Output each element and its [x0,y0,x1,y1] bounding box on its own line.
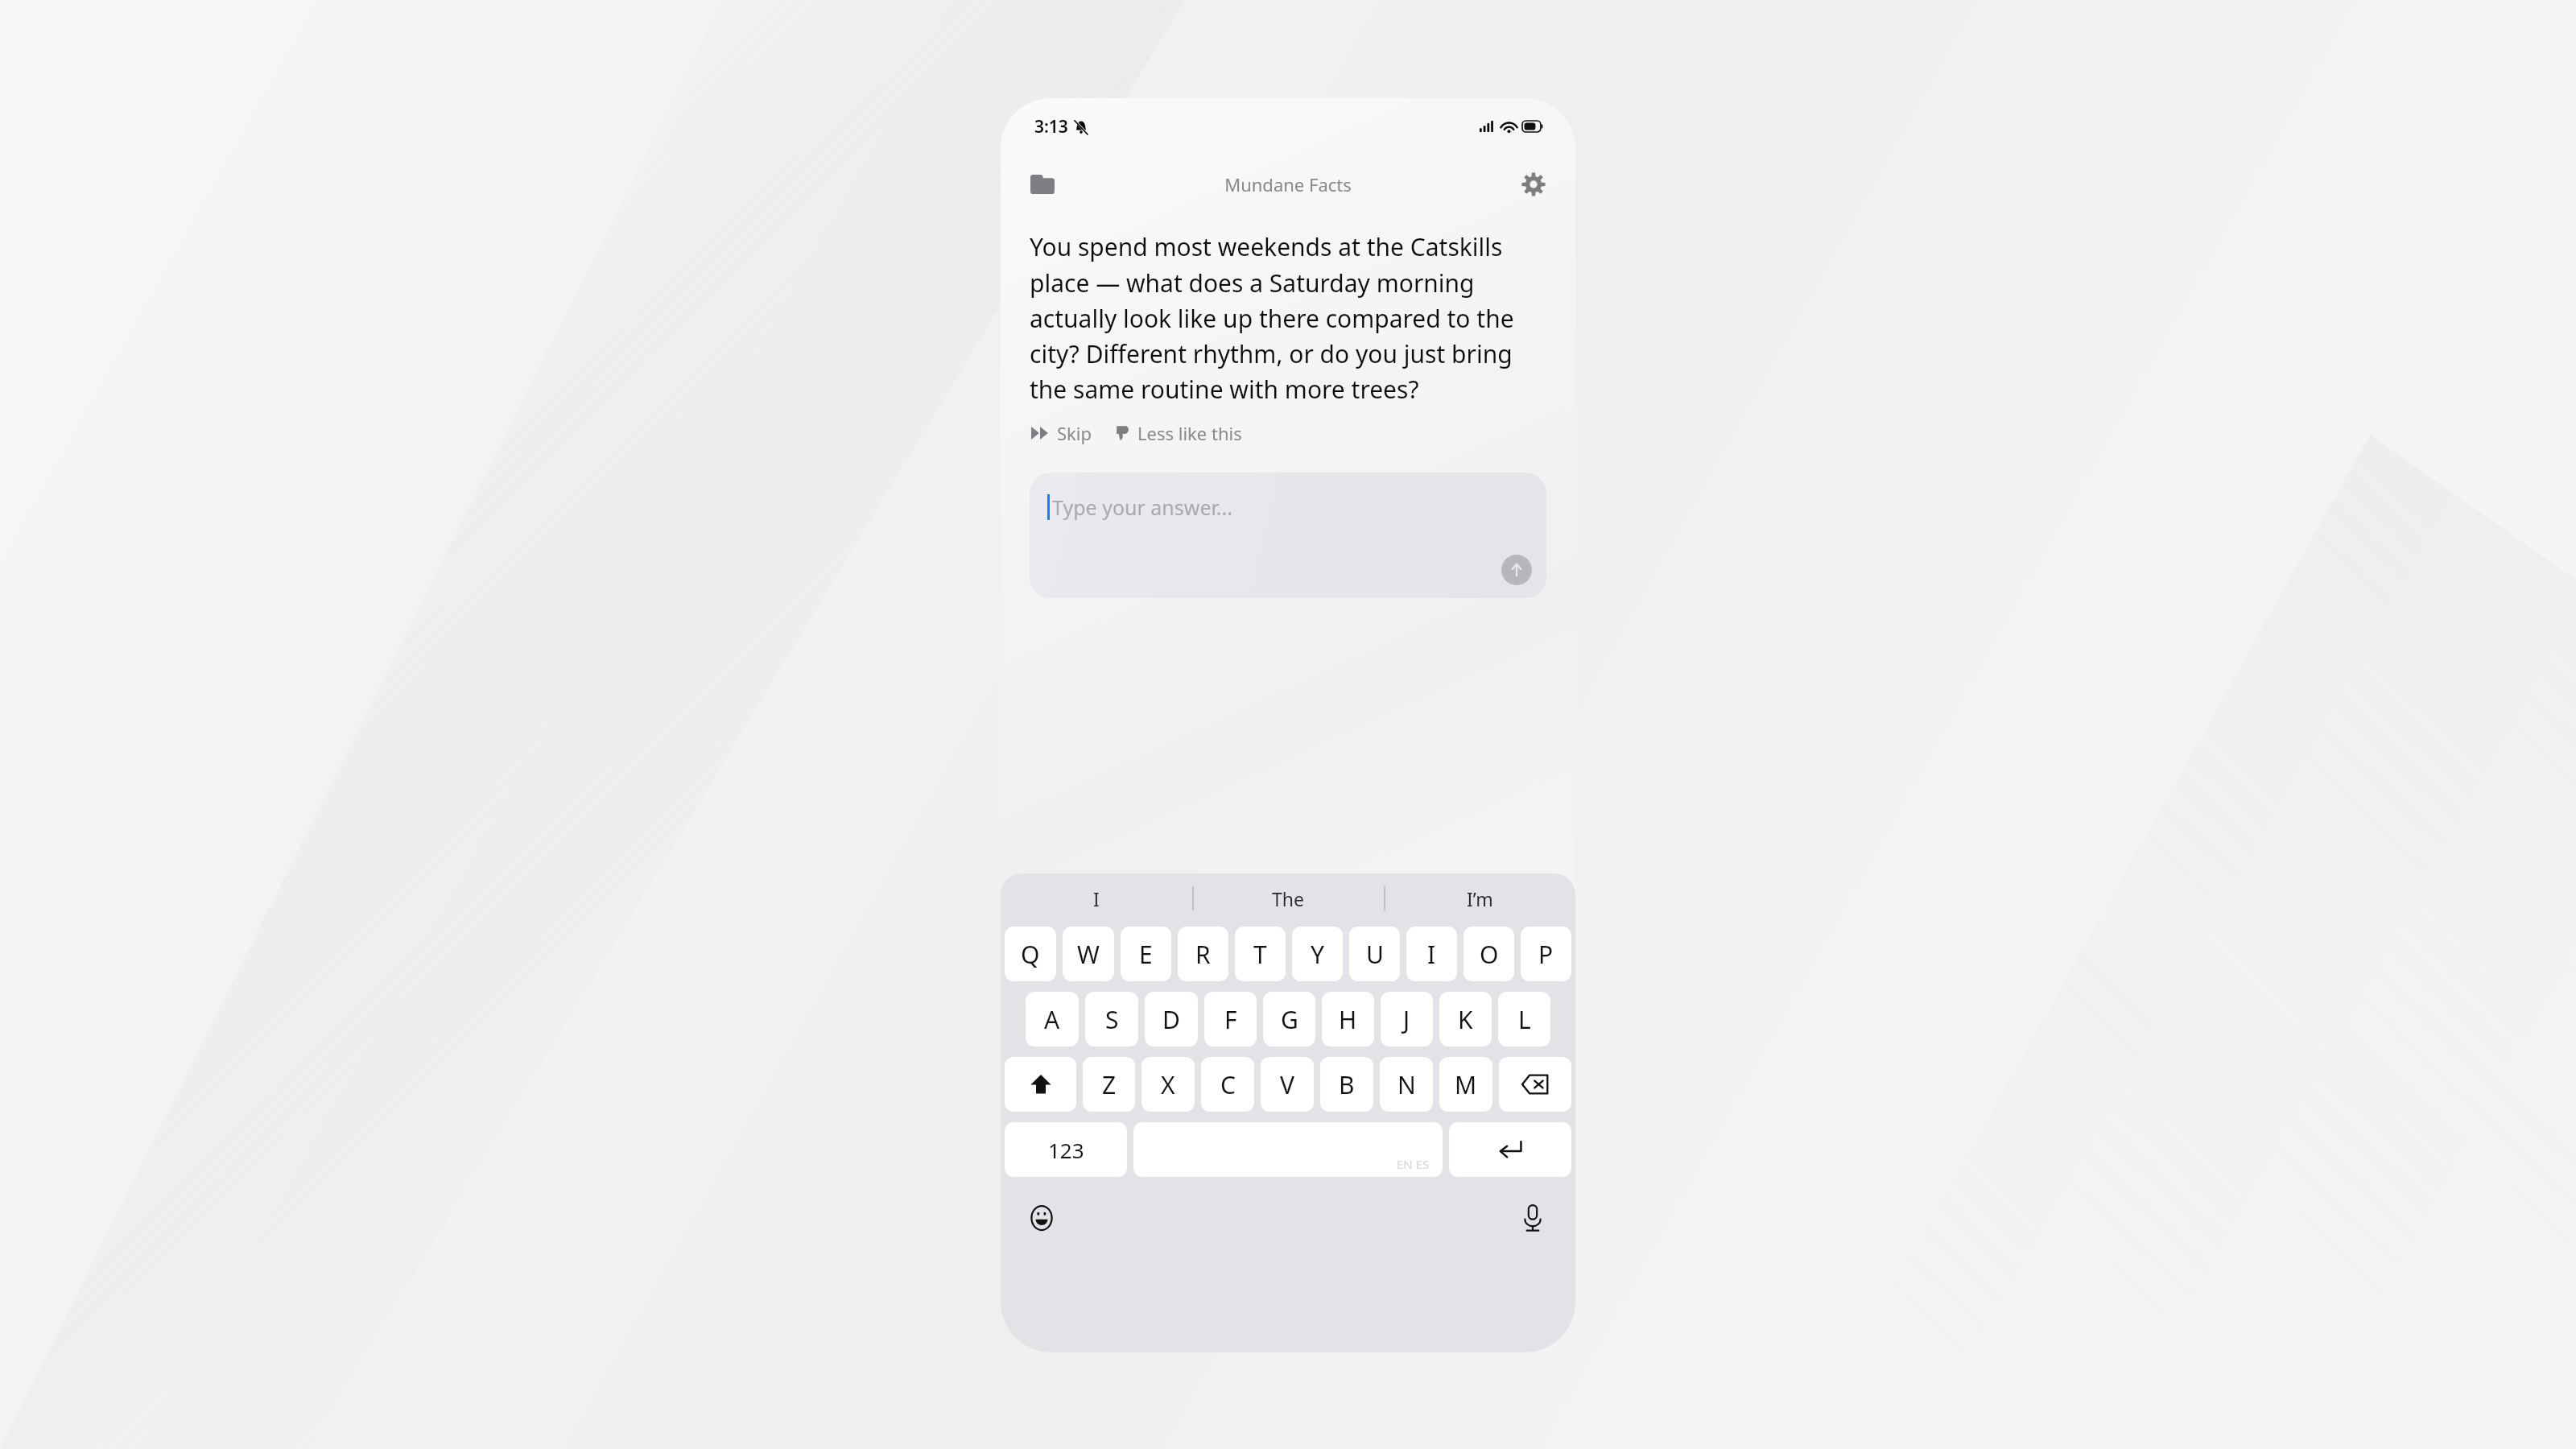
button[interactable]: K [1439,992,1492,1046]
staticText: W [1077,938,1100,971]
staticText: A [1044,1003,1060,1036]
staticText: You spend most weekends at the Catskills… [1030,230,1546,405]
staticText: E [1139,938,1153,971]
button[interactable]: Settings [1513,163,1554,205]
button[interactable]: F [1204,992,1257,1046]
staticText: The [1272,886,1304,911]
button[interactable]: G [1263,992,1315,1046]
button[interactable]: Less like this [1113,416,1244,450]
staticText: M [1455,1068,1477,1101]
staticText: Less like this [1137,421,1242,445]
button[interactable]: Shift [1005,1057,1076,1112]
button[interactable]: U [1349,927,1400,981]
staticText: J [1403,1003,1410,1036]
staticText: D [1162,1003,1180,1036]
staticText: F [1224,1003,1237,1036]
staticText: G [1281,1003,1298,1036]
staticText: Z [1102,1068,1117,1101]
staticText: Mundane Facts [1224,172,1352,196]
staticText: B [1339,1068,1355,1101]
button[interactable]: 123 [1005,1122,1127,1177]
staticText: 123 [1048,1136,1084,1164]
button[interactable]: Send [1501,555,1532,585]
staticText: Skip [1057,421,1092,445]
button[interactable]: D [1145,992,1198,1046]
button[interactable]: O [1463,927,1514,981]
button[interactable]: R [1178,927,1228,981]
staticText: V [1280,1068,1294,1101]
staticText: I’m [1467,886,1493,911]
button[interactable]: S [1085,992,1138,1046]
staticText: R [1195,938,1211,971]
staticText: N [1397,1068,1416,1101]
staticText: L [1518,1003,1531,1036]
button[interactable]: I’m [1384,873,1575,923]
staticText: K [1458,1003,1473,1036]
button[interactable]: Y [1292,927,1343,981]
button[interactable]: P [1521,927,1571,981]
staticText: EN ES [1397,1156,1430,1172]
staticText: X [1161,1068,1175,1101]
button[interactable]: Skip [1030,416,1094,450]
staticText: Type your answer... [1052,493,1232,521]
button[interactable]: V [1261,1057,1314,1112]
button[interactable]: M [1439,1057,1492,1112]
staticText: S [1105,1003,1119,1036]
button[interactable]: Return [1449,1122,1571,1177]
button[interactable]: Z [1083,1057,1135,1112]
button[interactable]: I [1406,927,1457,981]
button[interactable]: C [1201,1057,1254,1112]
staticText: O [1480,938,1499,971]
button[interactable]: Folders [1022,163,1063,205]
button[interactable]: Emoji [1022,1198,1062,1238]
button[interactable]: H [1322,992,1374,1046]
button[interactable]: W [1063,927,1114,981]
button[interactable]: J [1381,992,1433,1046]
button[interactable]: E [1121,927,1171,981]
button[interactable]: Q [1005,927,1056,981]
button[interactable]: Voice input [1513,1198,1553,1238]
button[interactable]: Backspace [1499,1057,1571,1112]
staticText: 3:13 [1034,115,1068,138]
button[interactable]: The [1192,873,1384,923]
button[interactable]: T [1235,927,1286,981]
staticText: Y [1311,938,1324,971]
staticText: I [1093,886,1100,911]
button[interactable]: A [1026,992,1079,1046]
button[interactable]: X [1141,1057,1195,1112]
staticText: H [1339,1003,1357,1036]
staticText: I [1427,938,1436,971]
staticText: Q [1021,938,1040,971]
button[interactable]: I [1001,873,1192,923]
staticText: T [1253,938,1267,971]
staticText: P [1538,938,1554,971]
button[interactable]: Type your answer... [1030,473,1546,598]
button[interactable]: B [1320,1057,1373,1112]
button[interactable]: N [1380,1057,1433,1112]
staticText: U [1366,938,1384,971]
button[interactable]: Space [1133,1122,1443,1177]
staticText: C [1220,1068,1236,1101]
button[interactable]: L [1498,992,1550,1046]
